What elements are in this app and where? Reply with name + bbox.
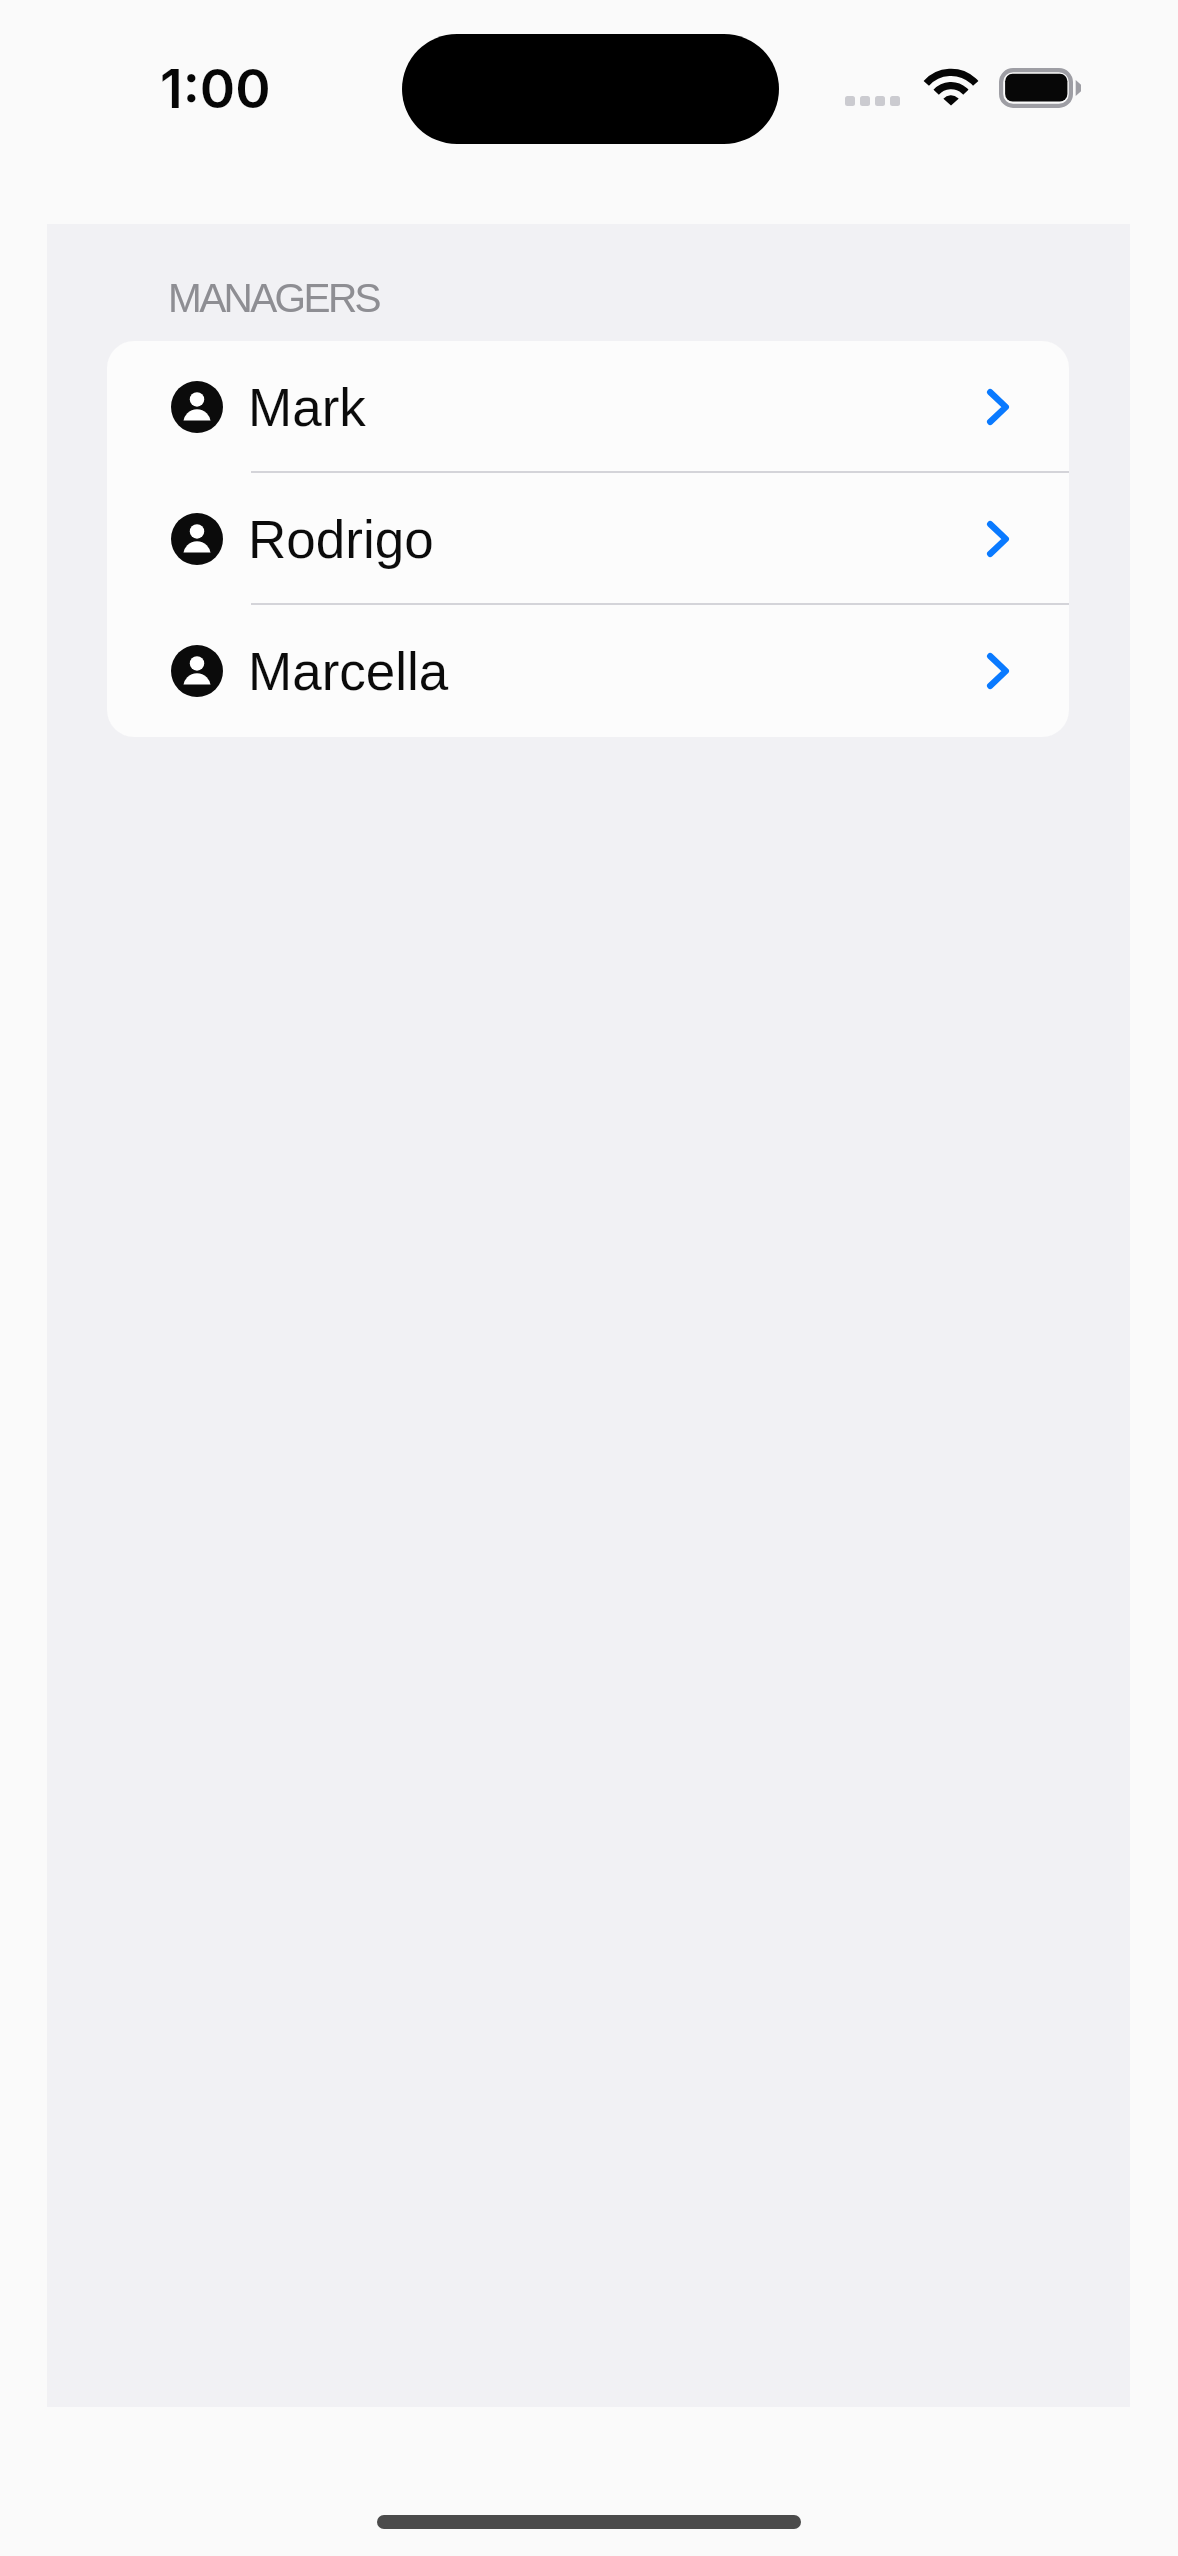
button[interactable]: Rodrigo (107, 473, 1069, 605)
staticText: Rodrigo (248, 510, 434, 569)
other: Wi-Fi (926, 68, 976, 106)
button[interactable]: Marcella (107, 605, 1069, 737)
other: Cellular signal (845, 96, 900, 106)
other: Open details (987, 389, 1009, 425)
other: Open details (987, 653, 1009, 689)
other: Battery (999, 68, 1081, 108)
other: Open details (987, 521, 1009, 557)
other: Dynamic Island (402, 34, 779, 144)
staticText: Mark (248, 378, 366, 437)
staticText: MANAGERS (168, 275, 379, 320)
button[interactable]: Mark (107, 341, 1069, 473)
staticText: 1:00 (160, 56, 271, 121)
staticText: Marcella (248, 642, 449, 701)
